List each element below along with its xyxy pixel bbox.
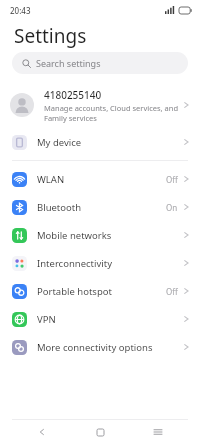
button[interactable]: Bluetooth — [0, 193, 200, 221]
button[interactable]: Back — [26, 420, 58, 444]
button[interactable]: Portable hotspot — [0, 277, 200, 305]
staticText: 20:43 — [10, 5, 31, 16]
button[interactable]: Interconnectivity — [0, 249, 200, 277]
button[interactable]: VPN — [0, 305, 200, 333]
staticText: Mobile networks — [37, 229, 183, 242]
staticText: Search settings — [36, 57, 101, 69]
staticText: Manage accounts, Cloud services, and — [44, 103, 179, 113]
staticText: Bluetooth — [37, 201, 166, 214]
button[interactable]: Recent apps — [142, 420, 174, 444]
button[interactable]: 4180255140 — [0, 82, 200, 128]
button[interactable]: Mobile networks — [0, 221, 200, 249]
staticText: Settings — [14, 23, 87, 49]
button[interactable]: More connectivity options — [0, 333, 200, 361]
staticText: VPN — [37, 313, 183, 326]
staticText: 4180255140 — [44, 88, 102, 102]
staticText: Family services — [44, 113, 97, 123]
staticText: Off — [166, 174, 178, 185]
staticText: On — [166, 202, 178, 213]
staticText: More connectivity options — [37, 341, 183, 354]
button[interactable]: My device — [0, 128, 200, 156]
staticText: Interconnectivity — [37, 257, 183, 270]
button[interactable]: WLAN — [0, 165, 200, 193]
staticText: Off — [166, 286, 178, 297]
button[interactable]: Home — [84, 420, 116, 444]
staticText: WLAN — [37, 173, 166, 186]
staticText: My device — [37, 136, 183, 149]
button[interactable]: Search settings — [12, 52, 188, 74]
staticText: Portable hotspot — [37, 285, 166, 298]
